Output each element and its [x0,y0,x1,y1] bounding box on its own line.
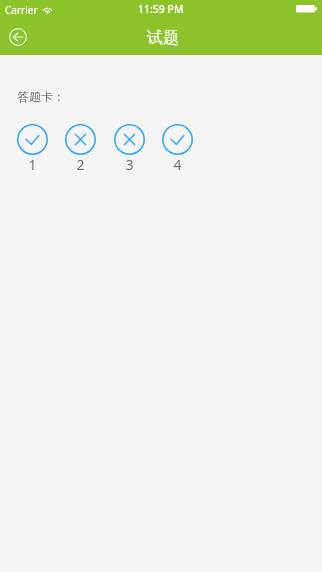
staticText: 1 [28,155,37,174]
button[interactable]: Back [4,23,32,51]
staticText: 3 [125,155,134,174]
staticText: 试题 [147,28,179,48]
button[interactable]: Question 2 wrong [65,124,96,174]
staticText: 答题卡： [17,89,65,104]
staticText: 11:59 PM [138,2,184,16]
button[interactable]: Question 4 correct [162,124,193,174]
staticText: 2 [76,155,85,174]
staticText: Carrier [5,3,38,17]
staticText: 4 [173,155,182,174]
button[interactable]: Question 1 correct [17,124,48,174]
button[interactable]: Question 3 wrong [114,124,145,174]
